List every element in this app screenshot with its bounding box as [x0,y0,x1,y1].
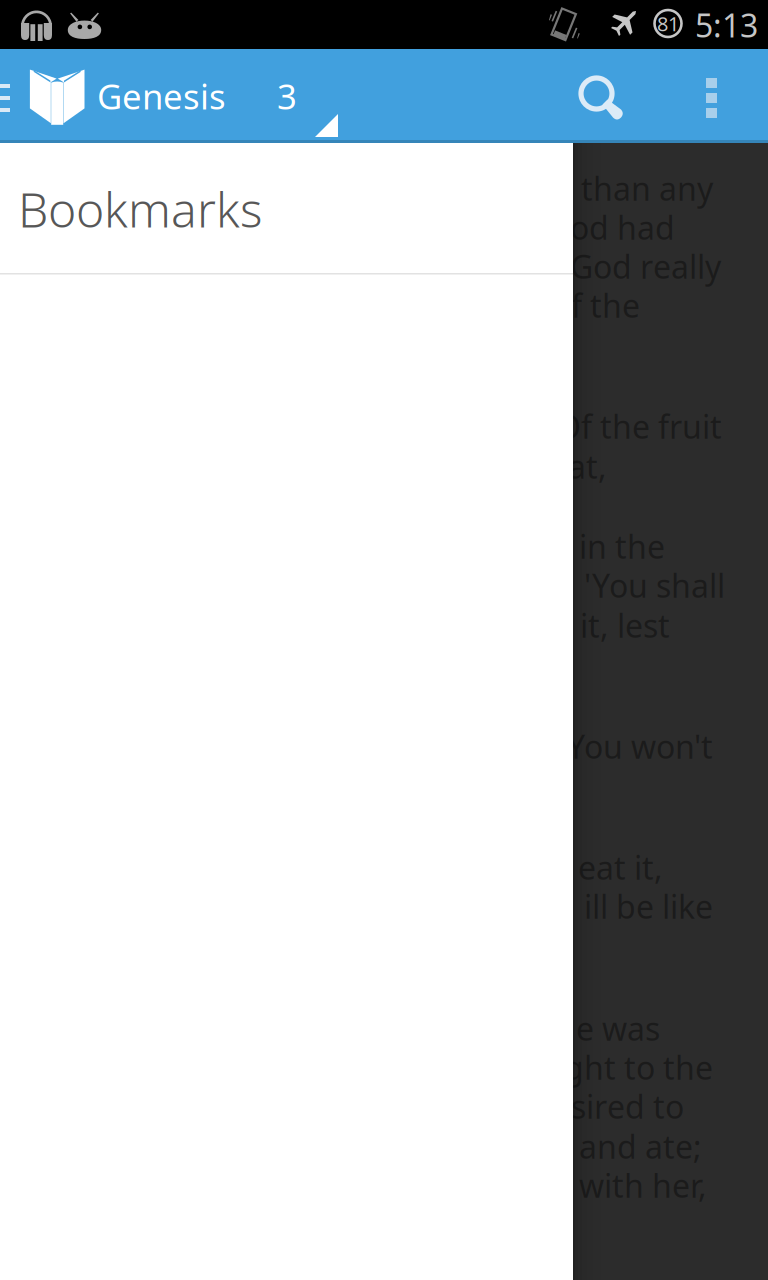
staticText: ill be like [584,885,713,927]
staticText: 81 [657,10,679,37]
staticText: it, lest [580,604,670,646]
staticText: 3 [277,73,297,119]
staticText: Bookmarks [18,177,263,241]
button[interactable]: Open navigation drawer [0,49,24,143]
staticText: e was [576,1007,660,1049]
button[interactable]: Search [548,49,648,143]
staticText: sired to [571,1085,684,1127]
staticText: 5:13 [695,4,758,46]
staticText: f the [571,284,640,326]
button[interactable]: 3 [277,49,347,143]
staticText: You won't [567,725,713,767]
staticText: 'You shall [584,564,725,606]
button[interactable]: More options [664,49,764,143]
staticText: eat it, [578,846,663,888]
staticText: in the [579,525,665,567]
staticText: God really [570,245,721,287]
staticText: at, [568,445,607,487]
button[interactable]: Bookmarks [0,143,573,273]
staticText: and ate; [579,1125,702,1167]
staticText: than any [581,167,713,209]
staticText: ght to the [564,1046,713,1088]
staticText: with her, [579,1164,707,1206]
button[interactable]: Genesis [27,49,237,143]
staticText: Of the fruit [556,405,722,447]
staticText: od had [570,206,675,248]
staticText: Genesis [97,73,226,119]
